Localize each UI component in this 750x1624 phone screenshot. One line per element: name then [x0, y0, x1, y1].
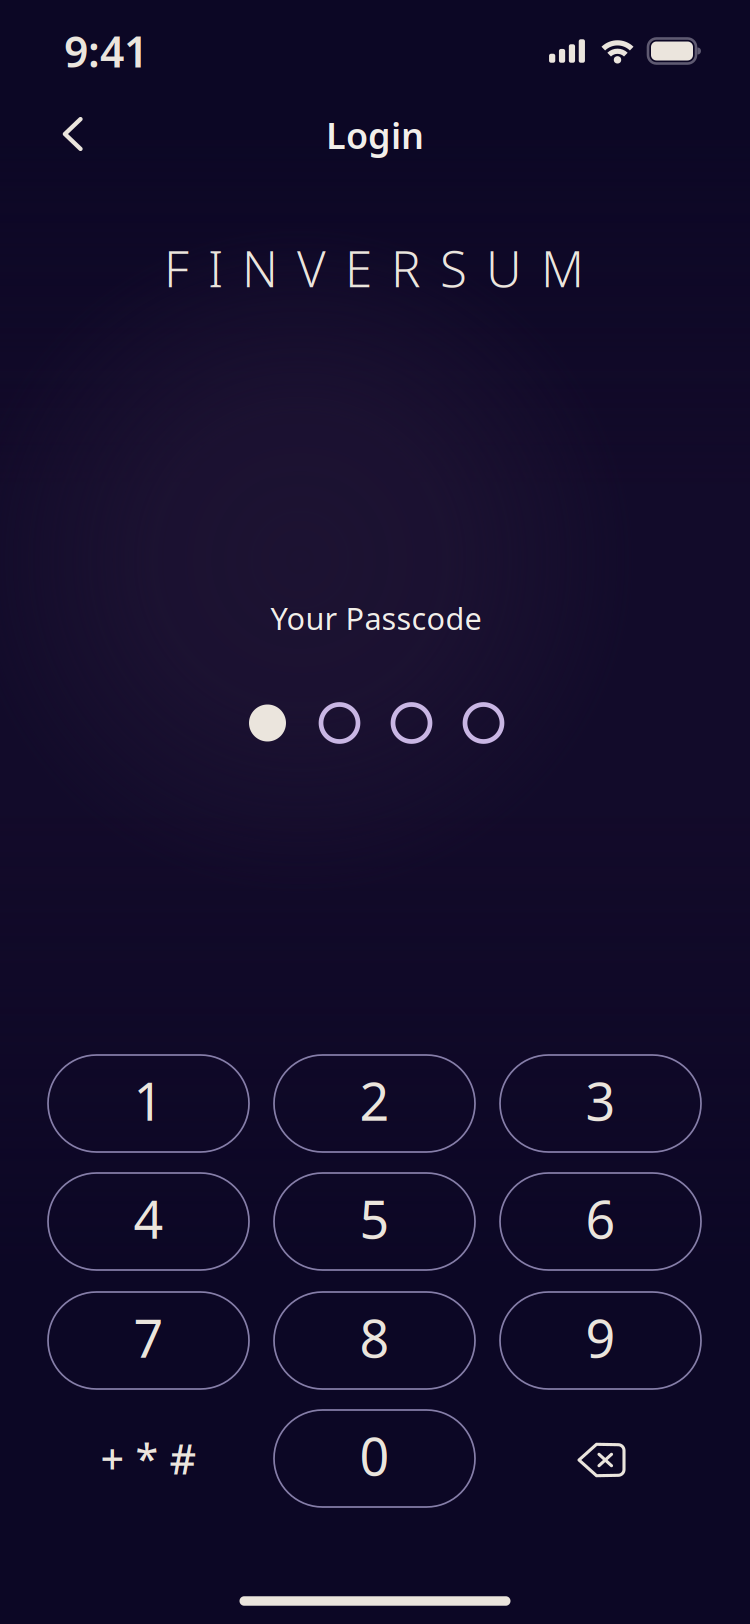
staticText: 7	[133, 1303, 163, 1372]
staticText: + * #	[100, 1431, 196, 1486]
button[interactable]: 7	[48, 1292, 249, 1389]
button[interactable]: 4	[48, 1173, 249, 1270]
staticText: 1	[133, 1066, 163, 1135]
staticText: Your Passcode	[270, 598, 481, 638]
staticText: 2	[359, 1066, 389, 1135]
staticText: 8	[359, 1303, 389, 1372]
staticText: 6	[585, 1184, 615, 1253]
button[interactable]: 3	[500, 1055, 701, 1152]
staticText: 5	[359, 1184, 389, 1253]
staticText: 9	[585, 1303, 615, 1372]
button[interactable]: 1	[48, 1055, 249, 1152]
button[interactable]: + * #	[48, 1410, 249, 1507]
staticText: Login	[326, 111, 424, 159]
staticText: FINVERSUM	[164, 235, 584, 301]
staticText: 4	[133, 1184, 163, 1253]
button[interactable]: 9	[500, 1292, 701, 1389]
button[interactable]: 0	[274, 1410, 475, 1507]
button[interactable]: 8	[274, 1292, 475, 1389]
staticText: 0	[359, 1421, 389, 1490]
button[interactable]: 5	[274, 1173, 475, 1270]
staticText: 9:41	[64, 23, 148, 79]
button[interactable]: Delete	[500, 1410, 701, 1507]
button[interactable]: Back	[35, 96, 111, 172]
button[interactable]: 6	[500, 1173, 701, 1270]
staticText: 3	[585, 1066, 615, 1135]
button[interactable]: 2	[274, 1055, 475, 1152]
